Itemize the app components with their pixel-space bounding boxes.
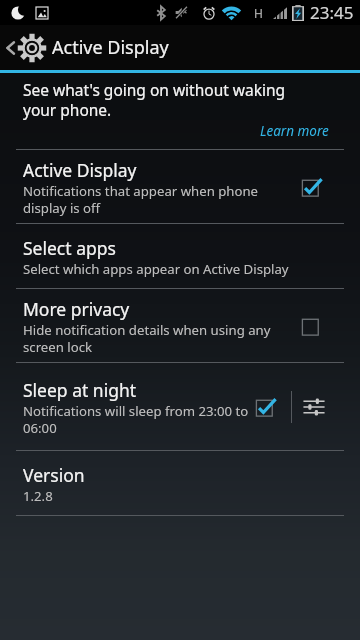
staticText: Notifications that appear when phone dis… bbox=[23, 182, 273, 217]
staticText: Version bbox=[23, 463, 85, 487]
button[interactable]: Sleep settings bbox=[292, 385, 336, 429]
staticText: Active Display bbox=[23, 158, 137, 182]
button[interactable]: Navigate up bbox=[0, 25, 360, 70]
staticText: Hide notification details when using any… bbox=[23, 321, 273, 356]
staticText: 23:45 bbox=[310, 1, 354, 24]
staticText: See what's going on without waking your … bbox=[23, 79, 298, 120]
button[interactable]: More privacy bbox=[0, 289, 360, 362]
button[interactable]: Sleep at night bbox=[0, 363, 360, 450]
staticText: H bbox=[254, 5, 263, 21]
button[interactable]: Sleep at night bbox=[251, 385, 281, 429]
other: Navigate up bbox=[5, 36, 16, 60]
staticText: Notifications will sleep from 23:00 to 0… bbox=[23, 402, 251, 437]
other: Settings icon bbox=[17, 33, 47, 63]
staticText: 1.2.8 bbox=[23, 487, 53, 505]
button[interactable]: More privacy bbox=[290, 304, 334, 348]
button[interactable]: Select apps bbox=[0, 224, 360, 288]
button[interactable]: Active Display bbox=[0, 150, 360, 223]
staticText: Learn more bbox=[260, 122, 329, 140]
staticText: Select which apps appear on Active Displ… bbox=[23, 260, 289, 278]
staticText: Active Display bbox=[52, 35, 169, 60]
button[interactable]: Learn more bbox=[0, 122, 360, 140]
button[interactable]: Version bbox=[0, 451, 360, 515]
staticText: More privacy bbox=[23, 297, 130, 321]
staticText: Sleep at night bbox=[23, 378, 137, 402]
staticText: Select apps bbox=[23, 236, 116, 260]
button[interactable]: Active Display bbox=[290, 165, 334, 209]
